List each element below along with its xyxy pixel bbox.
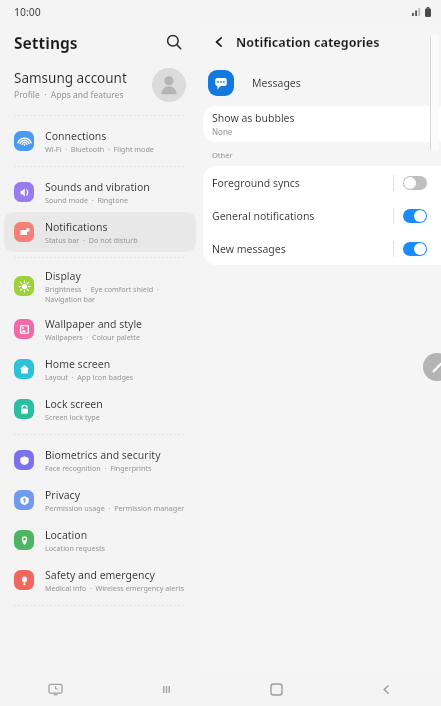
button[interactable]: Display — [4, 263, 196, 309]
button[interactable]: Back — [206, 29, 232, 55]
button[interactable]: Home — [221, 672, 331, 706]
button[interactable]: Privacy — [4, 480, 196, 520]
button[interactable]: Safety and emergency — [4, 560, 196, 600]
staticText: Settings — [14, 32, 78, 53]
button[interactable]: Notifications — [4, 212, 196, 252]
staticText: Permission usage · Permission manager — [45, 503, 185, 513]
staticText: Connections — [45, 129, 107, 143]
staticText: Other — [212, 150, 233, 160]
button[interactable]: Lock screen — [4, 389, 196, 429]
staticText: 10:00 — [14, 5, 41, 19]
button[interactable]: Samsung account — [0, 60, 200, 110]
staticText: Biometrics and security — [45, 448, 161, 462]
button[interactable]: General notifications — [203, 199, 441, 232]
button[interactable]: Recents — [111, 672, 221, 706]
staticText: Location — [45, 528, 88, 542]
button[interactable]: Location — [4, 520, 196, 560]
staticText: Status bar · Do not disturb — [45, 235, 138, 245]
staticText: Location requests — [45, 543, 105, 553]
staticText: Safety and emergency — [45, 568, 155, 582]
staticText: Wi-Fi · Bluetooth · Flight mode — [45, 144, 154, 154]
staticText: Notification categories — [236, 34, 380, 51]
staticText: Medical info · Wireless emergency alerts — [45, 583, 185, 593]
button[interactable]: Wallpaper and style — [4, 309, 196, 349]
button[interactable]: Sounds and vibration — [4, 172, 196, 212]
staticText: Show as bubbles — [212, 111, 295, 125]
staticText: Lock screen — [45, 397, 103, 411]
button[interactable]: Search — [158, 26, 190, 58]
button[interactable]: New messages — [203, 232, 441, 265]
button[interactable]: Show as bubbles — [203, 106, 441, 142]
button[interactable]: Back — [331, 672, 441, 706]
staticText: Brightness · Eye comfort shield · — [45, 284, 159, 294]
staticText: Wallpaper and style — [45, 317, 143, 331]
staticText: Display — [45, 269, 81, 283]
staticText: Face recognition · Fingerprints — [45, 463, 152, 473]
staticText: Messages — [252, 76, 301, 90]
staticText: Foreground syncs — [212, 176, 393, 190]
staticText: Navigation bar — [45, 294, 95, 304]
staticText: General notifications — [212, 209, 393, 223]
staticText: Privacy — [45, 488, 81, 502]
button[interactable]: Foreground syncs — [203, 166, 441, 199]
staticText: New messages — [212, 242, 393, 256]
staticText: Home screen — [45, 357, 111, 371]
staticText: Wallpapers · Colour palette — [45, 332, 140, 342]
staticText: Profile · Apps and features — [14, 89, 124, 101]
button[interactable]: Connections — [4, 121, 196, 161]
staticText: Screen lock type — [45, 412, 100, 422]
staticText: Samsung account — [14, 69, 127, 87]
staticText: Notifications — [45, 220, 108, 234]
button[interactable]: Edit — [423, 353, 441, 381]
staticText: Sound mode · Ringtone — [45, 195, 129, 205]
button[interactable]: Home screen — [4, 349, 196, 389]
staticText: None — [212, 126, 233, 137]
staticText: Layout · App icon badges — [45, 372, 134, 382]
staticText: Sounds and vibration — [45, 180, 150, 194]
button[interactable]: Screenshot — [0, 672, 111, 706]
button[interactable]: Biometrics and security — [4, 440, 196, 480]
